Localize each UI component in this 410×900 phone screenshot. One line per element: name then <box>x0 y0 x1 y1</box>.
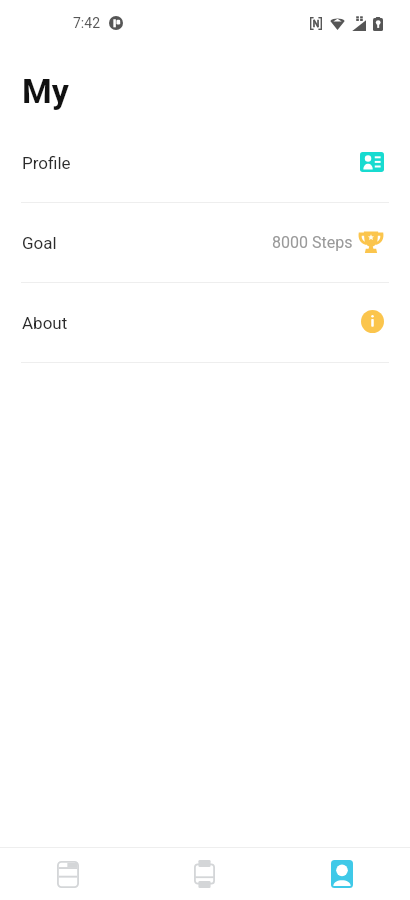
button[interactable]: About <box>0 283 410 362</box>
staticText: Profile <box>22 153 71 173</box>
staticText: Goal <box>22 233 57 253</box>
button[interactable]: Goal <box>0 203 410 282</box>
button[interactable]: My <box>273 848 410 900</box>
button[interactable]: Watch <box>136 848 273 900</box>
button[interactable]: Cards <box>0 848 136 900</box>
staticText: About <box>22 313 68 333</box>
staticText: My <box>22 71 69 111</box>
button[interactable]: Profile <box>0 123 410 202</box>
staticText: 7:42 <box>73 15 100 31</box>
staticText: 8000 Steps <box>272 233 353 252</box>
